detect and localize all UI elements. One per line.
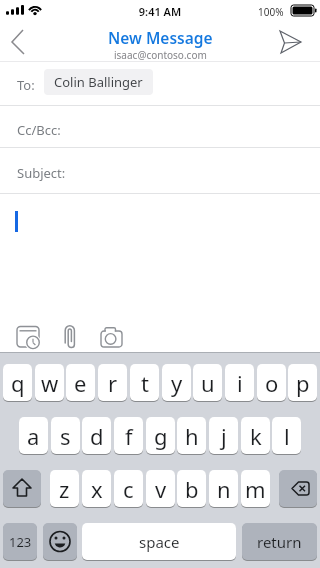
button[interactable]: s (51, 417, 80, 455)
button[interactable]: y (162, 364, 191, 402)
button[interactable]: d (82, 417, 111, 455)
staticText: e (74, 368, 87, 398)
button[interactable]: 123 (3, 523, 37, 561)
button[interactable]: Colin Ballinger (44, 69, 153, 95)
staticText: j (221, 421, 227, 451)
staticText: r (108, 368, 118, 398)
staticText: Subject: (17, 164, 66, 182)
button[interactable]: p (288, 364, 317, 402)
staticText: isaac@contoso.com (114, 48, 207, 62)
staticText: 100% (258, 5, 284, 19)
button[interactable] (8, 316, 48, 352)
button[interactable]: r (98, 364, 127, 402)
button[interactable]: m (241, 470, 270, 508)
staticText: q (11, 368, 25, 398)
staticText: a (27, 421, 40, 451)
button[interactable]: v (146, 470, 175, 508)
button[interactable]: e (66, 364, 95, 402)
button[interactable]: x (82, 470, 111, 508)
button[interactable] (3, 470, 41, 508)
button[interactable]: f (114, 417, 143, 455)
button[interactable]: j (209, 417, 238, 455)
staticText: To: (17, 76, 35, 94)
button[interactable]: Cc/Bcc: (0, 106, 320, 148)
staticText: 9:41 AM (0, 4, 320, 19)
staticText: Cc/Bcc: (17, 121, 61, 139)
button[interactable]: Subject: (0, 148, 320, 194)
button[interactable]: a (19, 417, 48, 455)
staticText: m (245, 474, 266, 504)
staticText: p (296, 368, 310, 398)
button[interactable] (0, 20, 40, 62)
button[interactable] (279, 470, 317, 508)
staticText: l (284, 421, 290, 451)
staticText: z (59, 474, 70, 504)
button[interactable]: l (272, 417, 301, 455)
staticText: b (185, 474, 199, 504)
button[interactable]: space (82, 523, 236, 561)
button[interactable]: o (257, 364, 286, 402)
staticText: y (171, 368, 183, 398)
staticText: x (91, 474, 103, 504)
staticText: d (90, 421, 104, 451)
staticText: h (185, 421, 199, 451)
button[interactable]: q (3, 364, 32, 402)
button[interactable]: i (225, 364, 254, 402)
button[interactable]: u (193, 364, 222, 402)
staticText: u (201, 368, 215, 398)
button[interactable]: z (50, 470, 79, 508)
button[interactable]: w (35, 364, 64, 402)
staticText: n (217, 474, 231, 504)
button[interactable]: c (114, 470, 143, 508)
staticText: c (123, 474, 134, 504)
button[interactable]: n (209, 470, 238, 508)
button[interactable] (43, 523, 77, 561)
button[interactable] (56, 316, 84, 352)
button[interactable]: return (242, 523, 317, 561)
staticText: t (141, 368, 149, 398)
button[interactable]: b (177, 470, 206, 508)
staticText: 123 (9, 533, 32, 551)
staticText: w (41, 368, 59, 398)
button[interactable]: g (146, 417, 175, 455)
staticText: return (257, 532, 302, 552)
button[interactable] (96, 316, 132, 352)
staticText: Colin Ballinger (54, 73, 143, 91)
staticText: New Message (108, 27, 213, 48)
button[interactable]: To: (0, 62, 320, 106)
staticText: f (125, 421, 133, 451)
button[interactable]: t (130, 364, 159, 402)
staticText: space (139, 532, 180, 552)
staticText: v (155, 474, 167, 504)
button[interactable] (276, 20, 320, 62)
staticText: s (60, 421, 71, 451)
staticText: i (237, 368, 243, 398)
staticText: k (250, 421, 262, 451)
button[interactable]: h (177, 417, 206, 455)
button[interactable]: k (241, 417, 270, 455)
staticText: o (265, 368, 279, 398)
staticText: g (154, 421, 168, 451)
